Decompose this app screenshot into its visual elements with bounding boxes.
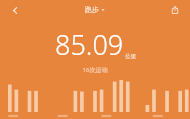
button[interactable]: Share xyxy=(166,1,184,19)
staticText: 16次运动 xyxy=(0,66,190,74)
staticText: 85.09 xyxy=(55,26,124,63)
button[interactable]: Back xyxy=(6,1,24,19)
staticText: 跑步 xyxy=(85,5,99,14)
staticText: 公里 xyxy=(125,53,136,60)
button[interactable]: 跑步 xyxy=(85,5,105,14)
